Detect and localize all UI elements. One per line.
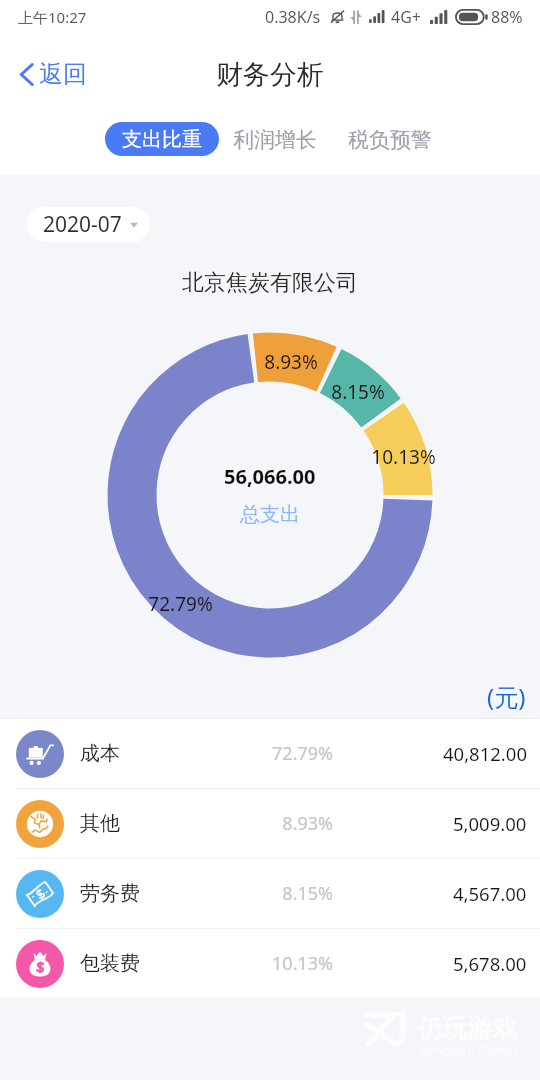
staticText: 72.79% <box>272 741 333 766</box>
staticText: 支出比重 <box>122 127 202 152</box>
staticText: 上午10:27 <box>18 7 87 27</box>
staticText: 10.13% <box>371 444 436 470</box>
staticText: 40,812.00 <box>443 741 527 766</box>
staticText: 成本 <box>80 741 120 766</box>
staticText: 8.93% <box>282 811 333 836</box>
staticText: 2020-07 <box>43 210 122 239</box>
staticText: 88% <box>491 6 523 28</box>
staticText: 利润增长 <box>233 127 317 153</box>
staticText: 总支出 <box>240 502 300 527</box>
button[interactable]: 税负预警 <box>348 123 432 156</box>
staticText: 0.38K/s <box>265 6 321 28</box>
button[interactable]: 支出比重 <box>105 122 219 156</box>
staticText: 其他 <box>80 811 120 836</box>
staticText: 财务分析 <box>216 58 324 92</box>
staticText: 4G+ <box>391 6 421 28</box>
staticText: 10.13% <box>272 951 333 976</box>
button[interactable]: 返回 <box>0 51 101 97</box>
button[interactable]: 包装费 <box>0 929 540 998</box>
staticText: 8.15% <box>331 379 385 405</box>
staticText: 56,066.00 <box>224 463 316 490</box>
staticText: 8.15% <box>282 881 333 906</box>
button[interactable]: 其他 <box>0 789 540 858</box>
staticText: 72.79% <box>148 591 213 617</box>
staticText: 税负预警 <box>348 127 432 153</box>
staticText: 返回 <box>39 59 87 89</box>
staticText: 北京焦炭有限公司 <box>182 269 358 297</box>
staticText: 5,009.00 <box>453 811 527 836</box>
staticText: 包装费 <box>80 951 140 976</box>
staticText: 劳务费 <box>80 881 140 906</box>
staticText: (元) <box>487 680 526 713</box>
staticText: 5,678.00 <box>453 951 527 976</box>
button[interactable]: 利润增长 <box>233 123 317 156</box>
staticText: 4,567.00 <box>453 881 527 906</box>
button[interactable]: 劳务费 <box>0 859 540 928</box>
staticText: 8.93% <box>264 349 318 375</box>
button[interactable]: 2020-07 <box>27 207 150 242</box>
button[interactable]: 成本 <box>0 719 540 788</box>
